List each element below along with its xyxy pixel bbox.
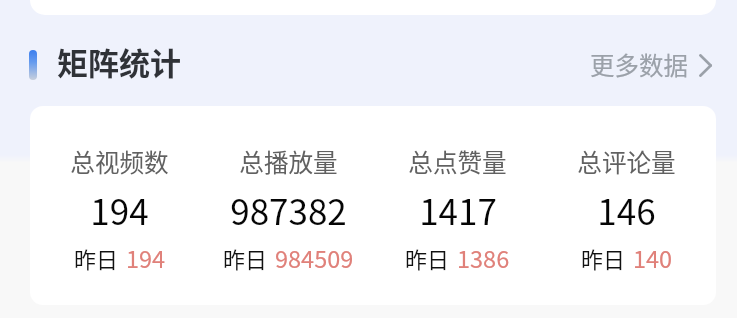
- staticText: 987382: [230, 184, 347, 235]
- button[interactable]: 总评论量: [542, 106, 711, 305]
- button[interactable]: 总点赞量: [373, 106, 542, 305]
- button[interactable]: 矩阵统计: [57, 39, 181, 84]
- staticText: 194: [126, 241, 166, 275]
- staticText: 984509: [275, 241, 354, 275]
- staticText: 总点赞量: [408, 143, 507, 179]
- staticText: 194: [90, 184, 149, 235]
- staticText: 1417: [419, 184, 497, 235]
- staticText: 昨日: [223, 242, 268, 274]
- staticText: 昨日: [74, 242, 119, 274]
- staticText: 更多数据: [590, 47, 688, 82]
- staticText: 140: [633, 241, 673, 275]
- staticText: 146: [597, 184, 656, 235]
- button[interactable]: 总视频数: [35, 106, 204, 305]
- other: More data: [699, 54, 712, 77]
- staticText: 总视频数: [70, 143, 169, 179]
- staticText: 矩阵统计: [57, 39, 181, 84]
- button[interactable]: 总播放量: [204, 106, 373, 305]
- staticText: 昨日: [581, 242, 626, 274]
- staticText: 总播放量: [239, 143, 338, 179]
- staticText: 昨日: [405, 242, 450, 274]
- staticText: 总评论量: [577, 143, 676, 179]
- button[interactable]: 更多数据: [582, 39, 720, 90]
- staticText: 1386: [457, 241, 510, 275]
